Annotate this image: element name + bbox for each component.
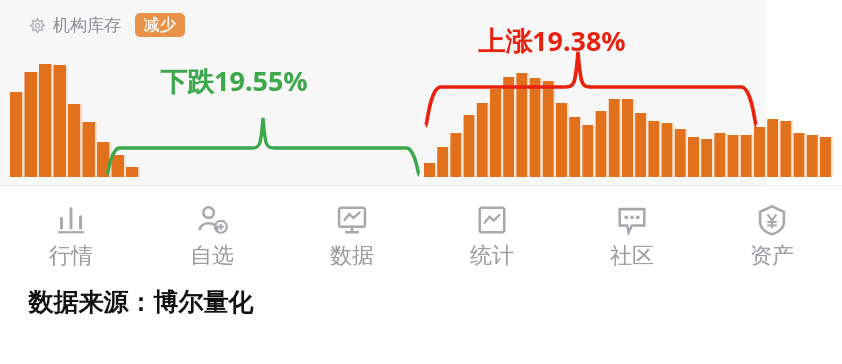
other: Settings (30, 18, 45, 33)
staticText: 数据 (330, 242, 374, 270)
staticText: 统计 (470, 242, 514, 270)
button[interactable]: 社区 (562, 197, 702, 270)
staticText: 上涨19.38% (478, 22, 626, 59)
staticText: 自选 (190, 242, 234, 270)
staticText: 社区 (610, 242, 654, 270)
button[interactable]: 统计 (422, 197, 562, 270)
staticText: 减少 (144, 15, 176, 35)
button[interactable]: 资产 (702, 197, 842, 270)
staticText: 机构库存 (53, 15, 121, 36)
button[interactable]: 自选 (141, 197, 282, 270)
staticText: 资产 (750, 242, 794, 270)
button[interactable]: Settings (30, 13, 185, 37)
staticText: 数据来源：博尔量化 (28, 287, 253, 318)
button[interactable]: 减少 (135, 13, 185, 37)
staticText: 行情 (49, 242, 93, 270)
button[interactable]: 行情 (0, 197, 141, 270)
staticText: 下跌19.55% (160, 62, 308, 99)
button[interactable]: 数据 (282, 197, 422, 270)
